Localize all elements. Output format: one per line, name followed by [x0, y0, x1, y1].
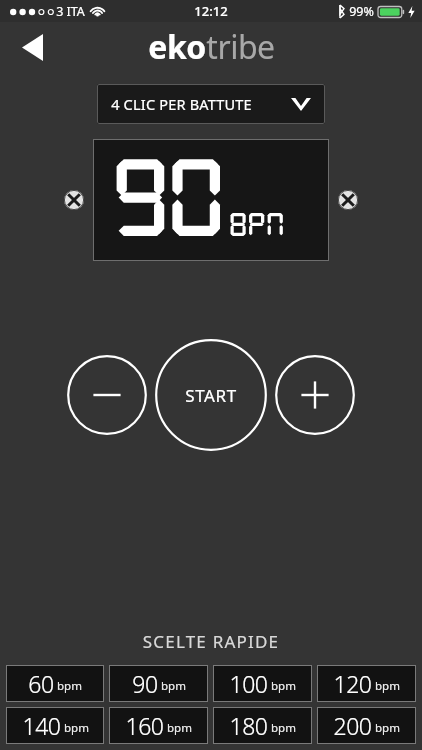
staticText: 4 CLIC PER BATTUTE: [111, 94, 252, 114]
staticText: 100: [229, 668, 268, 699]
button[interactable]: Decrease tempo: [67, 355, 147, 435]
staticText: bpm: [57, 678, 82, 694]
button[interactable]: 140: [6, 707, 104, 744]
staticText: bpm: [375, 720, 400, 736]
staticText: SCELTE RAPIDE: [0, 630, 422, 653]
button[interactable]: 200: [317, 707, 416, 744]
staticText: 60: [28, 668, 54, 699]
staticText: bpm: [64, 720, 89, 736]
button[interactable]: Increase tempo: [275, 355, 355, 435]
staticText: 120: [333, 668, 372, 699]
button[interactable]: 180: [213, 707, 312, 744]
button[interactable]: 90: [109, 665, 208, 702]
staticText: 90: [132, 668, 158, 699]
button[interactable]: 120: [317, 665, 416, 702]
button[interactable]: Back: [8, 23, 56, 71]
staticText: START: [185, 384, 237, 407]
button[interactable]: [93, 139, 329, 261]
staticText: bpm: [271, 678, 296, 694]
button[interactable]: 100: [213, 665, 312, 702]
staticText: 160: [125, 710, 164, 741]
staticText: bpm: [271, 720, 296, 736]
button[interactable]: 60: [6, 665, 104, 702]
button[interactable]: 4 CLIC PER BATTUTE: [97, 84, 325, 124]
staticText: bpm: [167, 720, 192, 736]
button[interactable]: 160: [109, 707, 208, 744]
staticText: eko: [148, 25, 206, 69]
staticText: 140: [22, 710, 61, 741]
staticText: 99%: [349, 3, 374, 20]
staticText: 180: [229, 710, 268, 741]
staticText: bpm: [375, 678, 400, 694]
staticText: 200: [333, 710, 372, 741]
staticText: bpm: [161, 678, 186, 694]
staticText: 3 ITA: [56, 3, 85, 20]
staticText: tribe: [206, 25, 275, 69]
staticText: 12:12: [194, 2, 228, 20]
button[interactable]: START: [155, 339, 267, 451]
